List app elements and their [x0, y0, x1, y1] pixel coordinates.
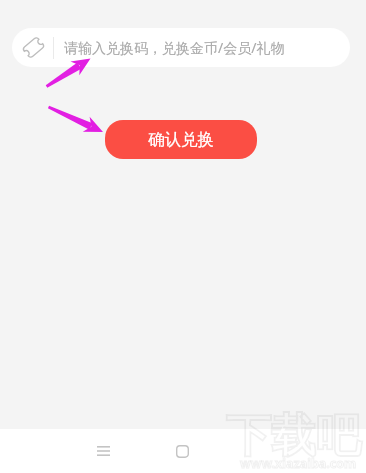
button[interactable]: 请输入兑换码，兑换金币/会员/礼物	[12, 28, 350, 67]
staticText: www.xiazaiba.com	[240, 455, 357, 472]
staticText: 下载吧	[226, 408, 361, 465]
staticText: 确认兑换	[148, 129, 214, 150]
button[interactable]: Home	[164, 433, 200, 469]
button[interactable]: Recent apps	[85, 433, 121, 469]
staticText: 请输入兑换码，兑换金币/会员/礼物	[64, 38, 285, 57]
button[interactable]: 确认兑换	[105, 120, 257, 159]
